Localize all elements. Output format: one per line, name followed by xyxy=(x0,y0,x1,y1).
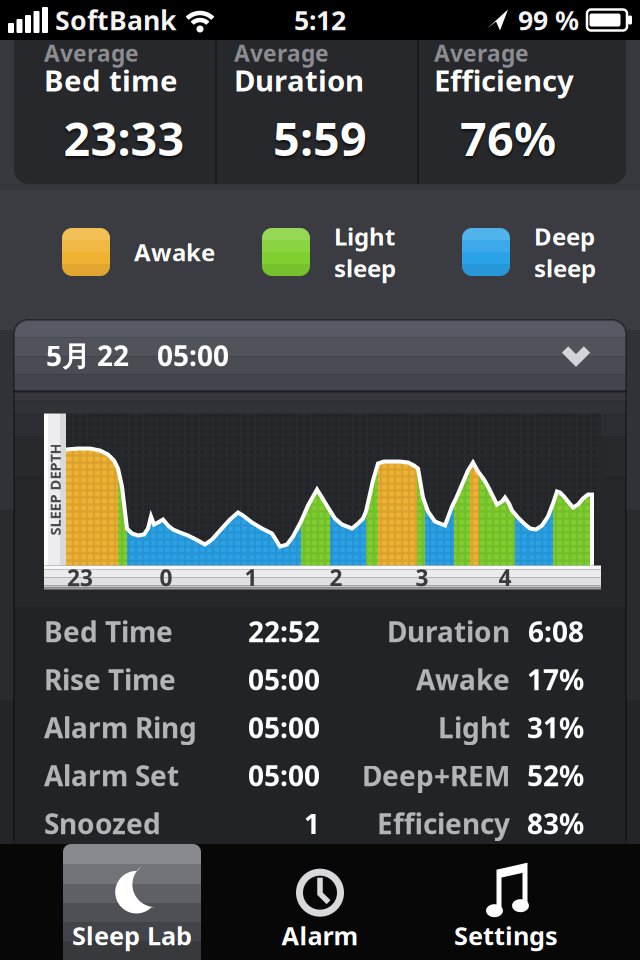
staticText: 5:59 xyxy=(273,107,367,169)
staticText: Snoozed xyxy=(44,805,161,842)
staticText: sleep xyxy=(334,252,396,284)
staticText: 1 xyxy=(304,805,320,842)
staticText: Settings xyxy=(454,919,558,952)
staticText: Efficiency xyxy=(377,805,510,842)
staticText: Alarm xyxy=(281,919,358,952)
staticText: 17% xyxy=(527,661,584,698)
staticText: 05:00 xyxy=(248,757,320,794)
button[interactable]: Alarm xyxy=(251,851,389,960)
staticText: Duration xyxy=(387,613,510,650)
staticText: 3 xyxy=(415,562,428,592)
staticText: Deep xyxy=(534,220,595,252)
staticText: Awake xyxy=(134,236,215,268)
staticText: Alarm Set xyxy=(44,757,179,794)
staticText: 23 xyxy=(67,562,93,592)
staticText: 99 % xyxy=(518,2,579,38)
staticText: 52% xyxy=(527,757,584,794)
staticText: Efficiency xyxy=(434,60,574,99)
button[interactable]: 5月 22 xyxy=(14,318,626,392)
staticText: 4 xyxy=(498,562,511,592)
staticText: Deep+REM xyxy=(362,757,510,794)
staticText: 83% xyxy=(527,805,584,842)
button[interactable]: Settings xyxy=(437,851,575,960)
staticText: 31% xyxy=(527,709,584,746)
staticText: SoftBank xyxy=(55,2,177,38)
staticText: Light xyxy=(334,220,395,252)
staticText: Average xyxy=(234,38,329,68)
staticText: 23:33 xyxy=(63,107,184,169)
staticText: Light xyxy=(438,709,510,746)
staticText: Awake xyxy=(416,661,510,698)
staticText: Average xyxy=(434,38,529,68)
staticText: 05:00 xyxy=(157,337,229,374)
staticText: 5:12 xyxy=(294,2,346,38)
staticText: Average xyxy=(44,38,139,68)
staticText: 5月 22 xyxy=(46,337,129,374)
staticText: 0 xyxy=(159,562,172,592)
staticText: 2 xyxy=(329,562,342,592)
staticText: Duration xyxy=(234,60,364,99)
staticText: sleep xyxy=(534,252,596,284)
staticText: SLEEP DEPTH xyxy=(9,480,101,499)
staticText: 6:08 xyxy=(528,613,584,650)
staticText: 1 xyxy=(244,562,257,592)
staticText: 76% xyxy=(460,107,556,169)
staticText: Bed time xyxy=(44,60,178,99)
button[interactable]: Sleep Lab xyxy=(63,851,201,960)
staticText: 05:00 xyxy=(248,709,320,746)
staticText: Sleep Lab xyxy=(72,919,192,952)
staticText: 05:00 xyxy=(248,661,320,698)
staticText: Bed Time xyxy=(44,613,173,650)
staticText: Rise Time xyxy=(44,661,176,698)
staticText: 22:52 xyxy=(248,613,320,650)
staticText: Alarm Ring xyxy=(44,709,197,746)
